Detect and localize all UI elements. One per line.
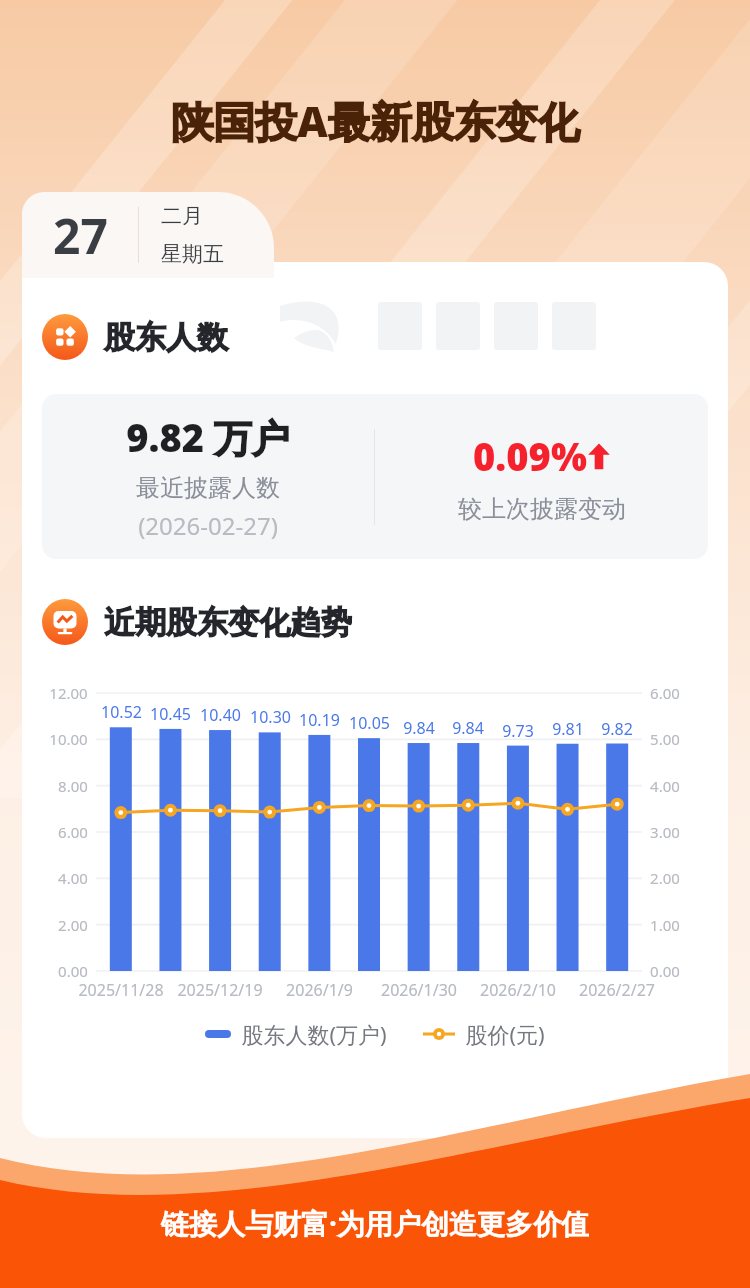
staticText: 4.00 bbox=[650, 776, 680, 796]
staticText: 最近披露人数 bbox=[136, 473, 280, 503]
staticText: 6.00 bbox=[650, 683, 680, 703]
staticText: 2026/2/27 bbox=[579, 979, 655, 1001]
staticText: 10.52 bbox=[101, 701, 142, 723]
staticText: 9.84 bbox=[452, 717, 484, 739]
staticText: 星期五 bbox=[161, 241, 224, 267]
staticText: 4.00 bbox=[58, 868, 88, 888]
staticText: 9.84 bbox=[403, 717, 435, 739]
staticText: 2026/1/9 bbox=[286, 979, 353, 1001]
staticText: 9.82 万户 bbox=[126, 411, 290, 463]
button[interactable]: Trend chart bbox=[42, 599, 728, 645]
staticText: 股价(元) bbox=[465, 1019, 545, 1049]
staticText: 2026/1/30 bbox=[381, 979, 457, 1001]
staticText: 2025/11/28 bbox=[78, 979, 164, 1001]
staticText: 股东人数(万户) bbox=[241, 1019, 387, 1049]
staticText: 9.73 bbox=[502, 720, 534, 742]
staticText: 陕国投A最新股东变化 bbox=[171, 92, 580, 149]
staticText: 0.09% bbox=[473, 430, 587, 482]
staticText: 9.82 bbox=[601, 718, 633, 740]
staticText: 2025/12/19 bbox=[177, 979, 263, 1001]
other: Shareholder count bbox=[42, 314, 88, 360]
staticText: 8.00 bbox=[58, 776, 88, 796]
staticText: (2026-02-27) bbox=[138, 509, 278, 542]
staticText: 2026/2/10 bbox=[480, 979, 556, 1001]
staticText: 10.19 bbox=[299, 709, 340, 731]
staticText: 10.40 bbox=[200, 704, 241, 726]
staticText: 10.05 bbox=[349, 712, 390, 734]
button[interactable]: 9.82 万户 bbox=[42, 394, 708, 559]
staticText: 2.00 bbox=[58, 915, 88, 935]
staticText: 6.00 bbox=[58, 822, 88, 842]
staticText: 较上次披露变动 bbox=[458, 494, 626, 524]
button[interactable]: 27 bbox=[22, 192, 274, 278]
staticText: 0.00 bbox=[58, 961, 88, 981]
staticText: 27 bbox=[53, 203, 108, 268]
staticText: 0.00 bbox=[650, 961, 680, 981]
other: Trend chart bbox=[42, 599, 88, 645]
staticText: 9.81 bbox=[552, 718, 584, 740]
button[interactable]: Shareholder count bbox=[42, 314, 728, 360]
staticText: 二月 bbox=[161, 203, 203, 229]
staticText: 10.30 bbox=[250, 706, 291, 728]
staticText: 5.00 bbox=[650, 729, 680, 749]
staticText: 2.00 bbox=[650, 868, 680, 888]
staticText: 1.00 bbox=[650, 915, 680, 935]
staticText: 链接人与财富·为用户创造更多价值 bbox=[161, 1204, 589, 1242]
staticText: 10.00 bbox=[49, 729, 88, 749]
staticText: 近期股东变化趋势 bbox=[104, 603, 352, 642]
staticText: 股东人数 bbox=[104, 318, 228, 357]
staticText: 3.00 bbox=[650, 822, 680, 842]
staticText: 10.45 bbox=[150, 703, 191, 725]
staticText: 12.00 bbox=[49, 683, 88, 703]
